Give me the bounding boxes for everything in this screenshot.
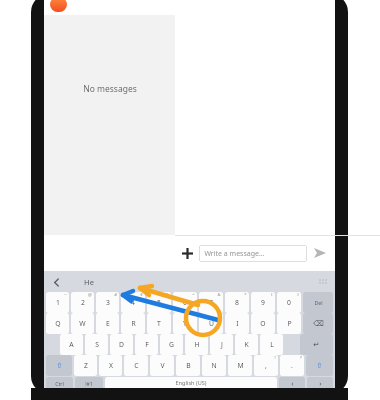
button[interactable]: F bbox=[135, 334, 158, 355]
staticText: I bbox=[236, 319, 239, 328]
button[interactable]: H bbox=[185, 334, 208, 355]
staticText: ( bbox=[271, 292, 273, 298]
button[interactable]: T bbox=[147, 313, 171, 334]
staticText: › bbox=[319, 378, 322, 388]
staticText: D bbox=[119, 340, 124, 349]
button[interactable]: Y bbox=[173, 313, 197, 334]
button[interactable]: Previous suggestions bbox=[48, 274, 64, 290]
button[interactable]: 6 bbox=[173, 292, 197, 313]
button[interactable]: ⇧ bbox=[306, 355, 333, 376]
staticText: A bbox=[69, 340, 74, 349]
button[interactable]: S bbox=[85, 334, 108, 355]
staticText: # bbox=[114, 292, 117, 298]
staticText: S bbox=[95, 340, 99, 349]
button[interactable]: U bbox=[199, 313, 223, 334]
button[interactable]: 4 bbox=[121, 292, 145, 313]
button[interactable]: J bbox=[210, 334, 233, 355]
button[interactable]: V bbox=[150, 355, 174, 376]
button[interactable]: Q bbox=[46, 313, 69, 334]
staticText: G bbox=[169, 340, 174, 349]
staticText: U bbox=[209, 319, 214, 328]
button[interactable]: 1 bbox=[46, 292, 69, 313]
button[interactable]: ↵ bbox=[300, 334, 333, 355]
button[interactable]: Profile bbox=[50, 0, 67, 12]
staticText: E bbox=[106, 319, 110, 328]
button[interactable]: 7 bbox=[199, 292, 223, 313]
staticText: P bbox=[287, 319, 292, 328]
button[interactable]: 5 bbox=[147, 292, 171, 313]
staticText: 1 bbox=[56, 298, 60, 307]
staticText: N bbox=[211, 361, 217, 370]
staticText: !#1 bbox=[85, 380, 93, 387]
button[interactable]: ⇧ bbox=[46, 355, 72, 376]
button[interactable]: P bbox=[277, 313, 301, 334]
staticText: X bbox=[109, 361, 113, 370]
button[interactable]: !#1 bbox=[75, 377, 103, 389]
button[interactable]: 2 bbox=[71, 292, 94, 313]
staticText: K bbox=[244, 340, 249, 349]
staticText: ⌫ bbox=[313, 319, 324, 328]
staticText: 2 bbox=[81, 298, 85, 307]
staticText: ~ bbox=[64, 292, 67, 298]
staticText: No messages bbox=[83, 83, 137, 95]
staticText: Ctrl bbox=[55, 380, 64, 387]
staticText: @ bbox=[88, 292, 92, 298]
staticText: 8 bbox=[235, 298, 239, 307]
staticText: English (US) bbox=[175, 379, 207, 387]
staticText: ) bbox=[297, 292, 299, 298]
staticText: & bbox=[217, 292, 221, 298]
staticText: T bbox=[157, 319, 161, 328]
staticText: Q bbox=[55, 319, 61, 328]
button[interactable]: 0 bbox=[277, 292, 301, 313]
button[interactable]: E bbox=[96, 313, 119, 334]
button[interactable]: O bbox=[251, 313, 275, 334]
staticText: W bbox=[79, 319, 86, 328]
button[interactable]: G bbox=[160, 334, 183, 355]
staticText: . bbox=[291, 361, 293, 370]
staticText: $ bbox=[140, 292, 143, 298]
button[interactable]: › bbox=[307, 377, 333, 389]
button[interactable]: , bbox=[254, 355, 278, 376]
button[interactable]: ⌫ bbox=[303, 313, 333, 334]
button[interactable]: C bbox=[124, 355, 148, 376]
button[interactable]: Z bbox=[74, 355, 97, 376]
button[interactable]: I bbox=[225, 313, 249, 334]
button[interactable]: D bbox=[110, 334, 133, 355]
button[interactable]: M bbox=[228, 355, 252, 376]
button[interactable]: Space bbox=[105, 377, 277, 389]
staticText: ? bbox=[300, 355, 302, 361]
staticText: 4 bbox=[131, 298, 135, 307]
staticText: % bbox=[165, 292, 169, 298]
button[interactable]: N bbox=[202, 355, 226, 376]
button[interactable]: He bbox=[84, 277, 94, 287]
staticText: ‹ bbox=[291, 378, 294, 388]
staticText: He bbox=[84, 277, 94, 287]
button[interactable]: Write a message... bbox=[199, 245, 307, 262]
staticText: V bbox=[160, 361, 165, 370]
button[interactable]: 3 bbox=[96, 292, 119, 313]
button[interactable]: Send bbox=[307, 240, 333, 266]
button[interactable]: Del bbox=[303, 292, 333, 313]
button[interactable]: Ctrl bbox=[46, 377, 73, 389]
button[interactable]: Keyboard options bbox=[315, 274, 331, 290]
staticText: ⇧ bbox=[56, 361, 63, 370]
button[interactable]: 8 bbox=[225, 292, 249, 313]
button[interactable]: K bbox=[235, 334, 258, 355]
staticText: L bbox=[270, 340, 274, 349]
button[interactable]: . bbox=[280, 355, 304, 376]
button[interactable]: X bbox=[99, 355, 122, 376]
button[interactable]: Add attachment bbox=[175, 241, 199, 265]
button[interactable]: W bbox=[71, 313, 94, 334]
button[interactable]: L bbox=[260, 334, 283, 355]
button[interactable]: R bbox=[121, 313, 145, 334]
staticText: Z bbox=[84, 361, 88, 370]
button[interactable]: ‹ bbox=[279, 377, 305, 389]
staticText: ⇧ bbox=[316, 361, 323, 370]
button[interactable]: B bbox=[176, 355, 200, 376]
button[interactable]: A bbox=[60, 334, 83, 355]
staticText: ^ bbox=[192, 292, 195, 298]
staticText: ! bbox=[274, 355, 276, 361]
button[interactable]: 9 bbox=[251, 292, 275, 313]
